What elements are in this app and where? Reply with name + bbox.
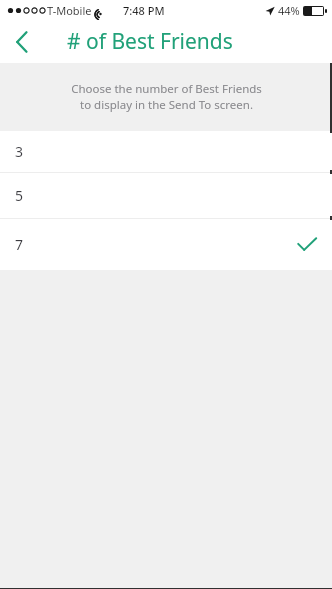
staticText: 44% [278, 3, 300, 18]
staticText: 7:48 PM [123, 3, 165, 18]
button[interactable]: 3 [0, 131, 332, 172]
staticText: 7 [15, 235, 24, 254]
button[interactable]: 5 [0, 173, 332, 218]
staticText: Choose the number of Best Friends to dis… [71, 81, 262, 112]
staticText: # of Best Friends [67, 27, 233, 56]
button[interactable]: 7 [0, 219, 332, 270]
staticText: T-Mobile [47, 3, 92, 18]
staticText: 5 [15, 186, 24, 205]
staticText: 3 [15, 142, 24, 161]
button[interactable]: Back [0, 20, 44, 63]
